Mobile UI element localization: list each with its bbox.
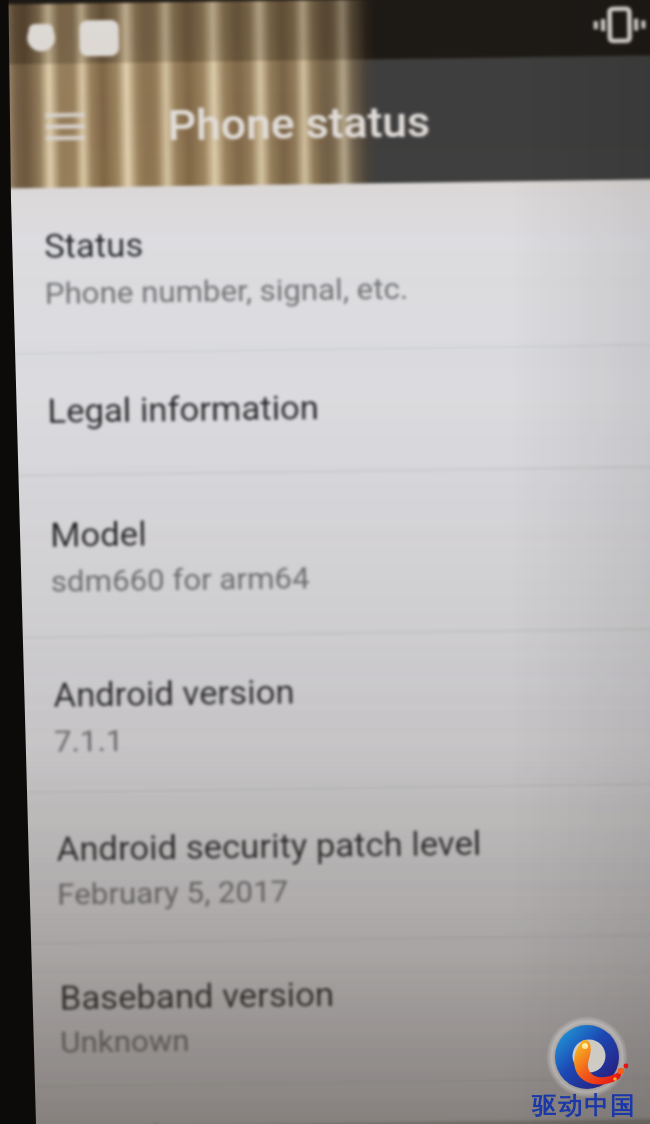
button[interactable]: Status [0,179,650,355]
staticText: February 5, 2017 [57,873,289,912]
button[interactable]: Legal information [0,345,650,477]
other: Vibrate mode [596,2,643,47]
staticText: Status [44,225,144,266]
staticText: sdm660 for arm64 [51,560,310,599]
button[interactable]: Model [0,467,650,639]
staticText: Legal information [47,388,320,431]
button[interactable]: Open navigation menu [39,101,91,152]
staticText: Android version [53,672,295,715]
staticText: Unknown [60,1023,190,1060]
staticText: Phone status [167,96,431,150]
button[interactable]: Baseband version [0,935,650,1088]
staticText: Baseband version [59,975,335,1018]
staticText: 驱动中国 [531,1091,635,1121]
button[interactable]: Android version [0,629,650,794]
staticText: Phone number, signal, etc. [44,271,409,311]
button[interactable]: Kernel version [0,1078,650,1124]
button[interactable]: Android security patch level [0,784,650,945]
staticText: 7.1.1 [54,723,124,759]
staticText: Android security patch level [56,824,482,869]
staticText: Model [50,514,148,555]
